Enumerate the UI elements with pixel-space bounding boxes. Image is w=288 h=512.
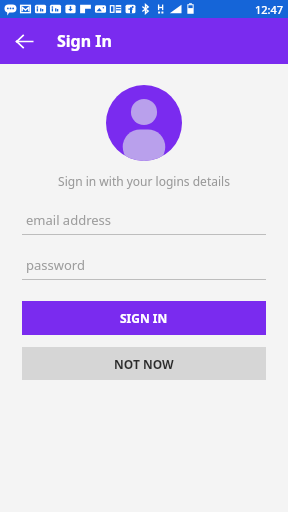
staticText: Sign In xyxy=(57,30,112,52)
button[interactable]: email address xyxy=(22,211,266,235)
button[interactable]: SIGN IN xyxy=(22,301,266,335)
button[interactable]: password xyxy=(22,256,266,280)
button[interactable]: Back xyxy=(8,25,40,57)
staticText: password xyxy=(26,256,85,274)
staticText: NOT NOW xyxy=(114,356,174,372)
staticText: Sign in with your logins details xyxy=(58,173,230,189)
staticText: email address xyxy=(26,211,112,229)
staticText: 12:47 xyxy=(255,2,284,17)
button[interactable]: NOT NOW xyxy=(22,347,266,380)
staticText: SIGN IN xyxy=(120,310,168,326)
